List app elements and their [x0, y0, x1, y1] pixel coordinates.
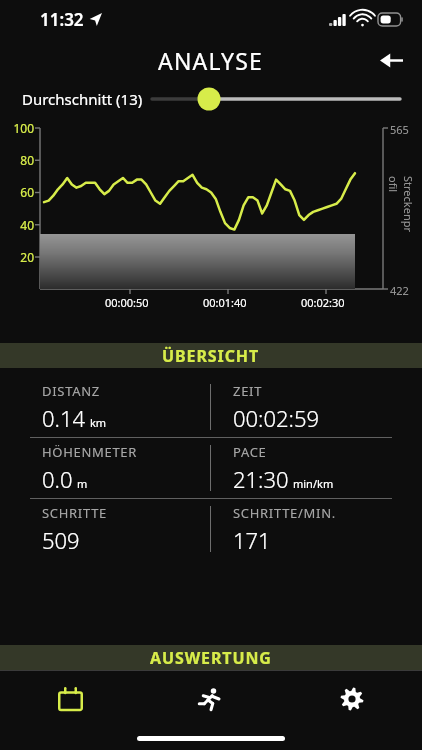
button[interactable]: AUSWERTUNG	[0, 645, 422, 670]
staticText: 565	[390, 122, 409, 137]
staticText: ANALYSE	[158, 45, 264, 76]
button[interactable]: ZEIT	[233, 377, 422, 437]
staticText: 00:01:40	[203, 295, 247, 310]
staticText: SCHRITTE/MIN.	[233, 504, 336, 522]
staticText: HÖHENMETER	[42, 443, 138, 461]
staticText: 11:32	[40, 8, 84, 31]
staticText: 509	[42, 525, 80, 555]
button[interactable]: Aktivität	[140, 671, 281, 727]
button[interactable]: PACE	[233, 438, 422, 498]
staticText: 422	[390, 283, 409, 298]
staticText: SCHRITTE	[42, 504, 108, 522]
staticText: 100	[6, 120, 34, 136]
staticText: ZEIT	[233, 382, 263, 400]
button[interactable]: Durchschnitt Regler	[0, 82, 422, 116]
staticText: 20	[6, 249, 34, 265]
staticText: 00:00:50	[105, 295, 149, 310]
button[interactable]: SCHRITTE/MIN.	[233, 499, 422, 559]
staticText: 0.0	[42, 464, 73, 494]
staticText: 00:02:59	[233, 403, 320, 433]
staticText: Durchschnitt (13)	[22, 89, 143, 109]
staticText: PACE	[233, 443, 267, 461]
button[interactable]: HÖHENMETER	[42, 438, 210, 498]
staticText: 00:02:30	[301, 295, 345, 310]
staticText: min/km	[293, 476, 334, 491]
staticText: Streckenprofil	[386, 176, 416, 236]
staticText: ÜBERSICHT	[162, 345, 260, 367]
staticText: 171	[233, 525, 271, 555]
staticText: 0.14	[42, 403, 86, 433]
button[interactable]: ÜBERSICHT	[0, 343, 422, 368]
staticText: DISTANZ	[42, 382, 100, 400]
staticText: 40	[6, 217, 34, 233]
button[interactable]: Zurück	[368, 38, 414, 82]
staticText: AUSWERTUNG	[150, 647, 272, 669]
staticText: km	[90, 415, 107, 430]
staticText: 60	[6, 184, 34, 200]
staticText: 80	[6, 152, 34, 168]
button[interactable]: DISTANZ	[42, 377, 210, 437]
staticText: m	[77, 476, 88, 491]
button[interactable]: Kalender	[0, 671, 140, 727]
button[interactable]: Einstellungen	[281, 671, 422, 727]
staticText: 21:30	[233, 464, 289, 494]
button[interactable]: SCHRITTE	[42, 499, 210, 559]
